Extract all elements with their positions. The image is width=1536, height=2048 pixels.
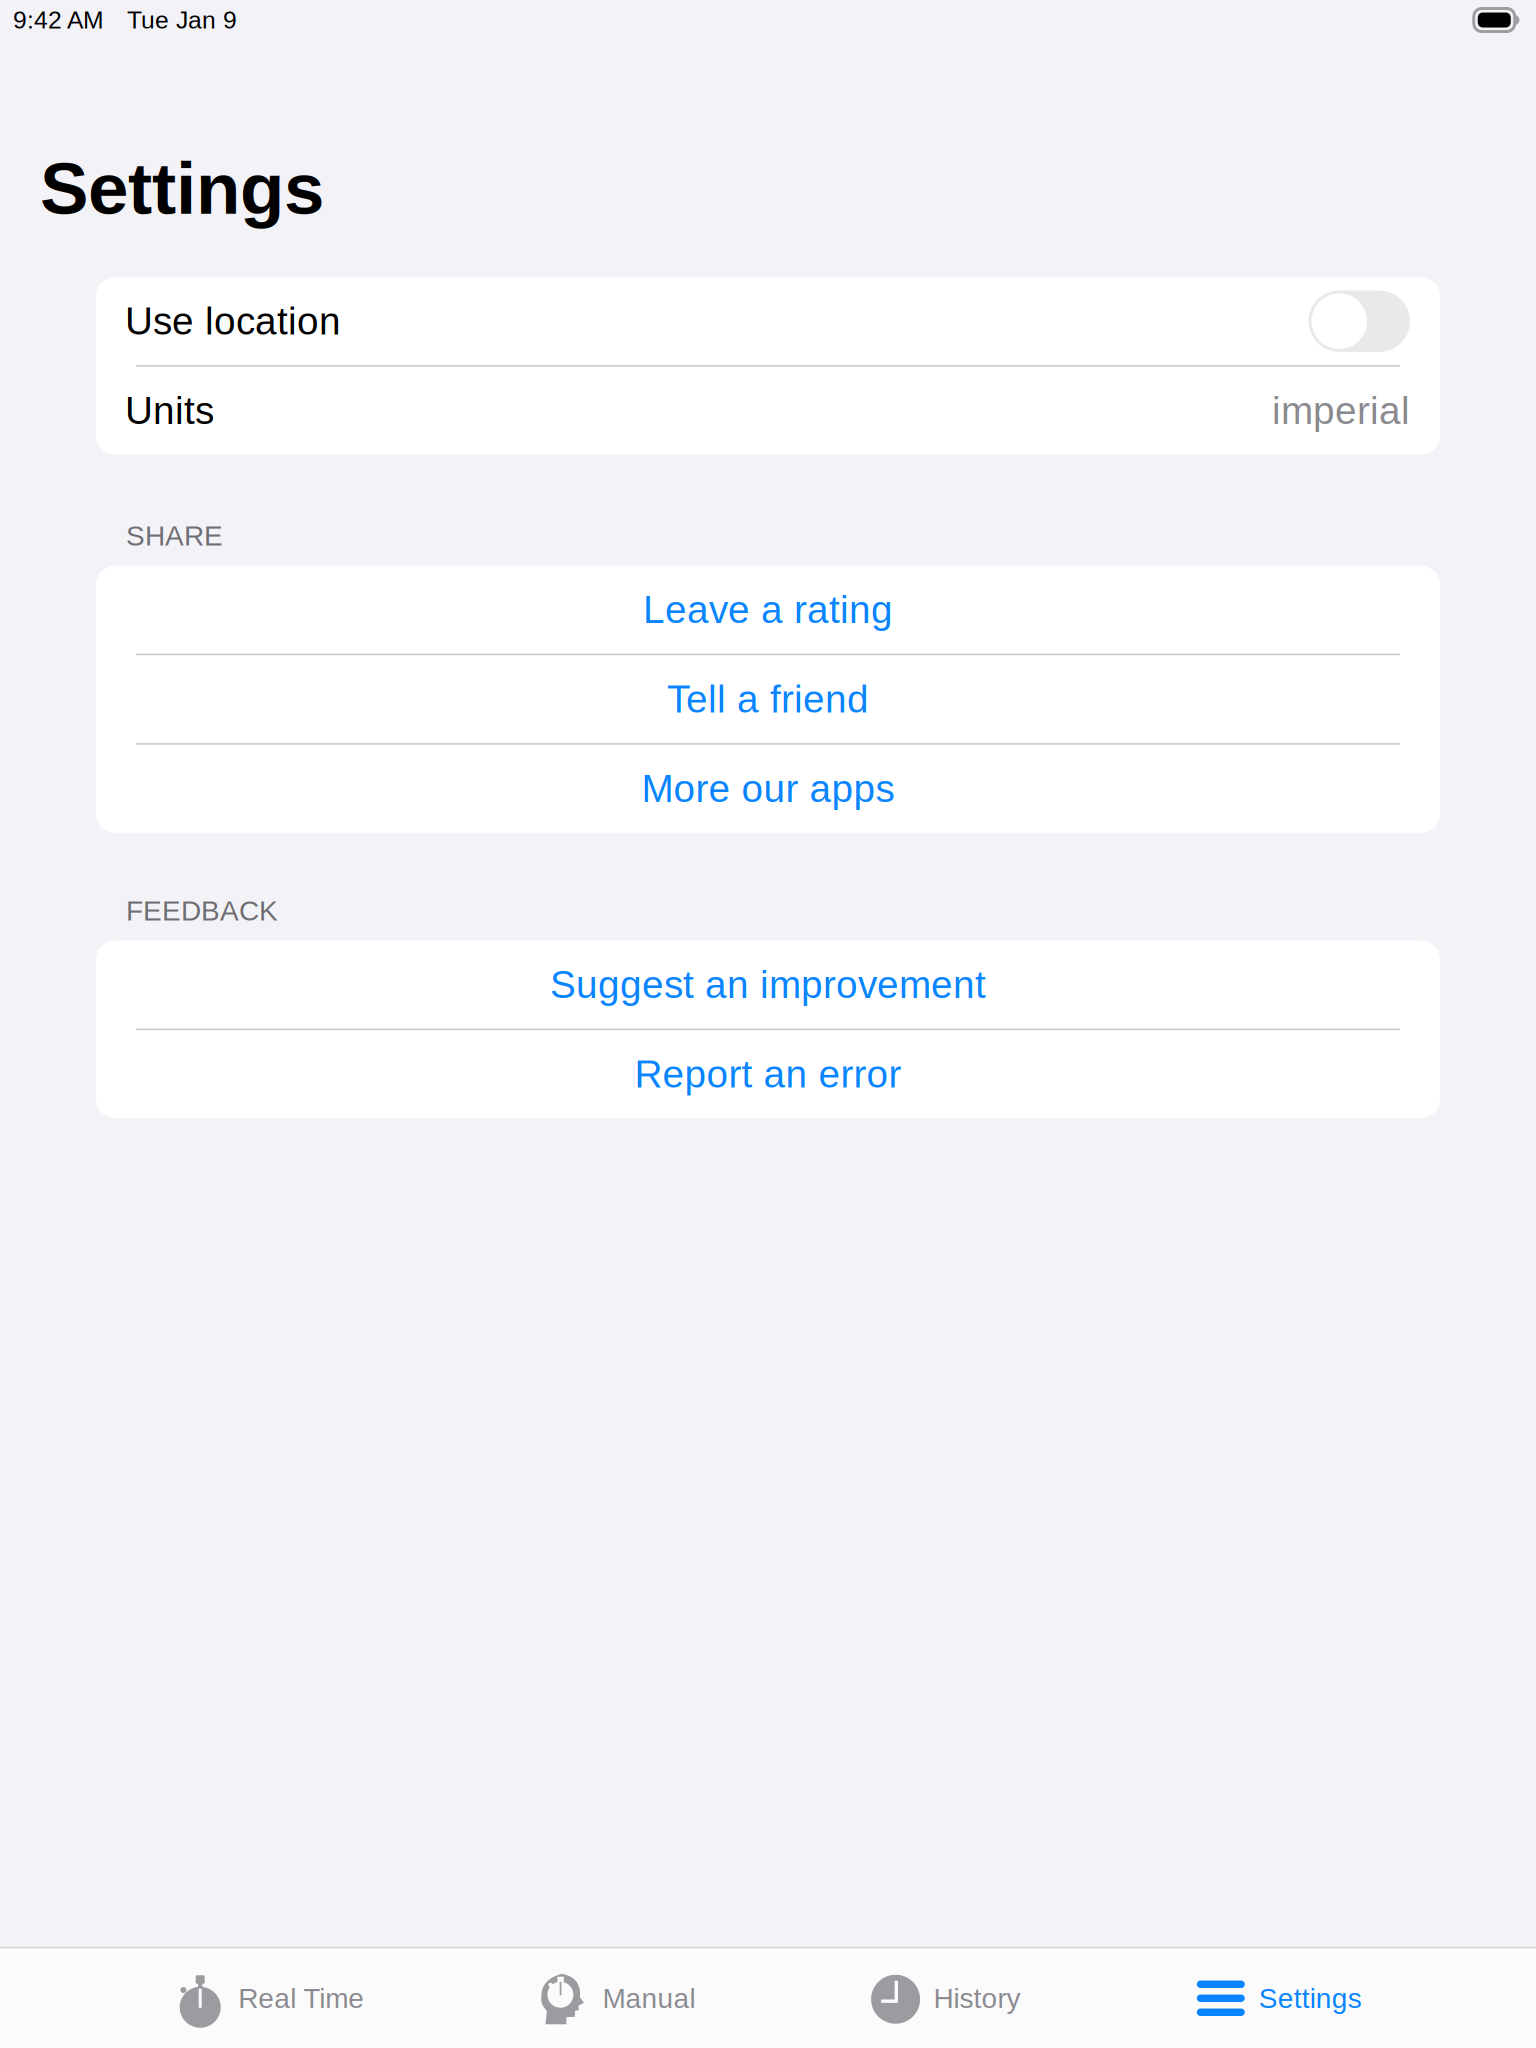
button[interactable]: Units bbox=[96, 367, 1440, 455]
button[interactable]: Manual bbox=[538, 1949, 695, 2048]
staticText: Real Time bbox=[238, 1983, 364, 2014]
staticText: SHARE bbox=[126, 520, 223, 551]
staticText: Report an error bbox=[634, 1053, 901, 1096]
button[interactable]: Report an error bbox=[96, 1030, 1440, 1118]
button[interactable]: Leave a rating bbox=[96, 566, 1440, 654]
staticText: Use location bbox=[125, 300, 341, 343]
staticText: imperial bbox=[1272, 389, 1410, 432]
button[interactable]: Tell a friend bbox=[96, 655, 1440, 743]
staticText: Settings bbox=[1259, 1983, 1362, 2014]
staticText: Leave a rating bbox=[643, 588, 893, 631]
button[interactable]: History bbox=[870, 1949, 1021, 2048]
staticText: Settings bbox=[40, 148, 324, 229]
button[interactable]: Real Time bbox=[174, 1949, 364, 2048]
staticText: Manual bbox=[602, 1983, 695, 2014]
button[interactable]: Use location bbox=[96, 277, 1440, 365]
staticText: History bbox=[934, 1983, 1021, 2014]
button[interactable]: Suggest an improvement bbox=[96, 941, 1440, 1029]
button[interactable]: Settings bbox=[1195, 1949, 1362, 2048]
staticText: Tell a friend bbox=[667, 678, 869, 721]
staticText: Units bbox=[125, 389, 214, 432]
button[interactable]: More our apps bbox=[96, 745, 1440, 833]
staticText: 9:42 AM bbox=[13, 6, 104, 34]
staticText: More our apps bbox=[641, 767, 894, 810]
staticText: Tue Jan 9 bbox=[127, 6, 237, 34]
staticText: FEEDBACK bbox=[126, 895, 278, 926]
staticText: Suggest an improvement bbox=[550, 963, 986, 1006]
